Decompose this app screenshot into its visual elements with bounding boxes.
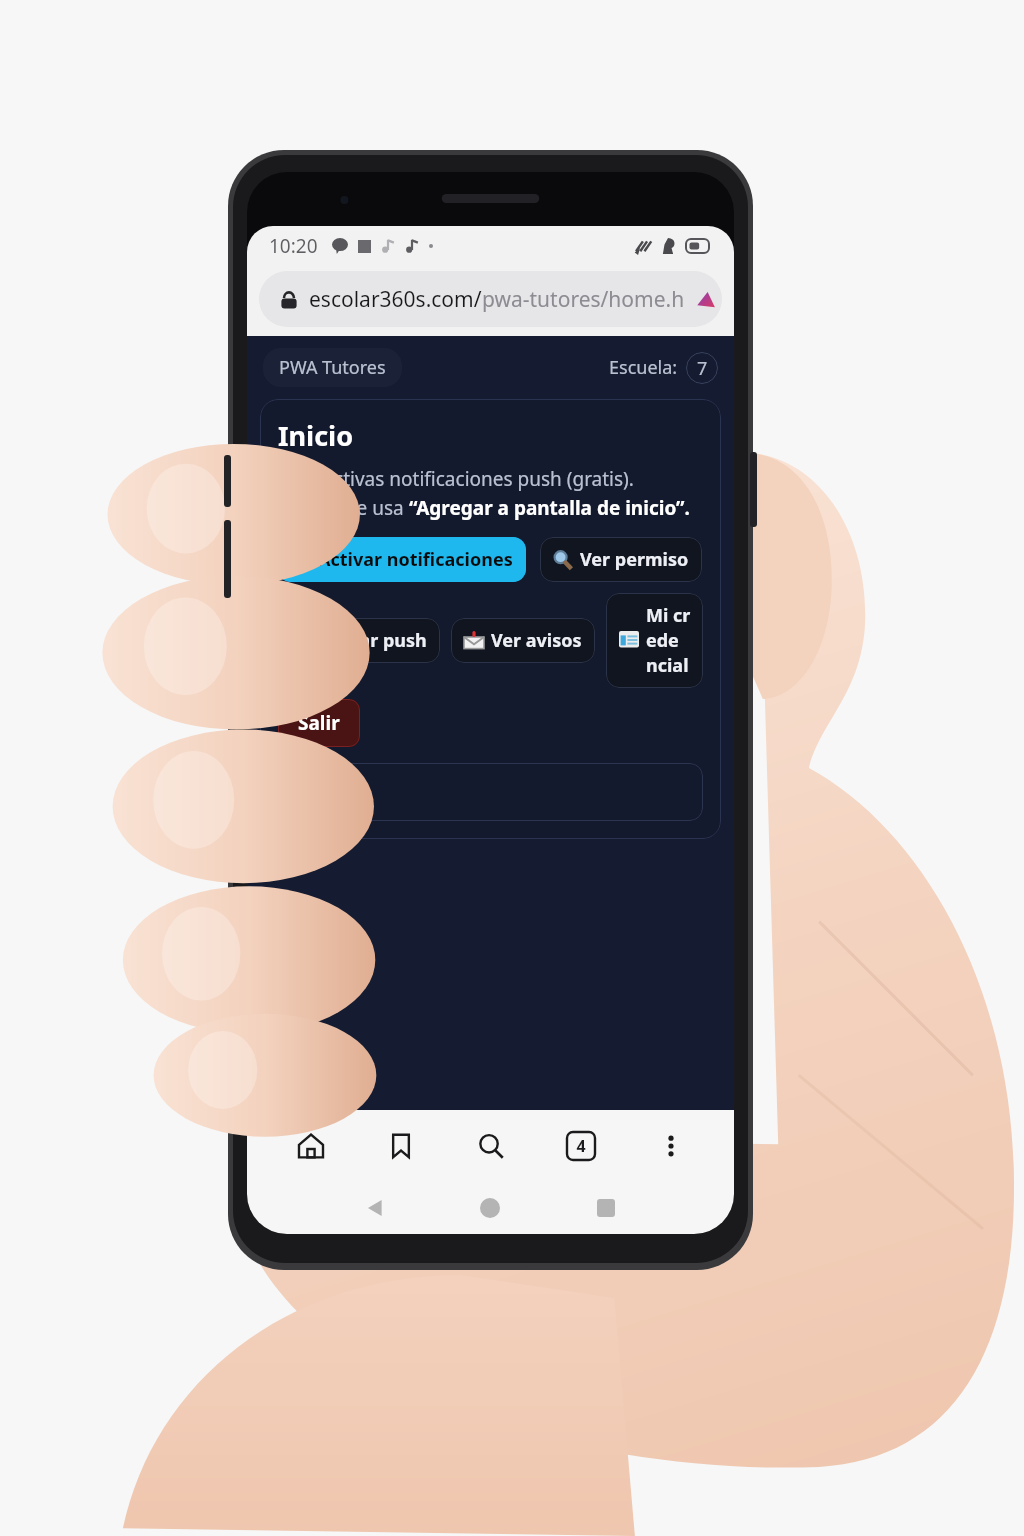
button[interactable]: Ver permiso — [540, 537, 702, 582]
button[interactable]: Mi credencial — [606, 593, 703, 688]
button[interactable]: Probar push — [278, 618, 440, 663]
button[interactable]: Activar notificaciones — [278, 537, 526, 582]
button[interactable]: Salir — [278, 699, 360, 747]
staticText: Ver avisos — [491, 628, 582, 653]
staticText: En iPhone usa — [278, 495, 409, 521]
staticText: Probar push — [318, 628, 427, 653]
staticText: Ver permiso — [580, 547, 689, 572]
button[interactable]: Home — [432, 1185, 548, 1231]
staticText: Aquí activas notificaciones push (gratis… — [278, 466, 634, 492]
button[interactable]: Back — [317, 1185, 432, 1231]
staticText: “Agregar a pantalla de inicio”. — [409, 495, 690, 521]
button[interactable]: PWA Tutores — [263, 348, 402, 387]
button[interactable]: Bookmarks — [356, 1116, 446, 1176]
staticText: escolar360s.com/ — [309, 285, 482, 314]
button[interactable]: Tabs — [536, 1116, 626, 1176]
staticText: 4 — [576, 1135, 586, 1157]
staticText: PWA Tutores — [279, 355, 386, 380]
staticText: Mi credencial — [646, 603, 690, 678]
button[interactable]: Search — [446, 1116, 536, 1176]
button[interactable]: Address bar — [259, 271, 722, 327]
staticText: Salir — [298, 710, 340, 736]
staticText: Escuela: — [609, 355, 678, 380]
button[interactable]: Recents — [548, 1185, 664, 1231]
staticText: Inicio — [278, 417, 354, 454]
button[interactable]: Ver avisos — [451, 618, 595, 663]
staticText: 7 — [697, 356, 708, 381]
staticText: pwa-tutores/home.h — [482, 285, 685, 314]
button[interactable]: More options — [626, 1116, 716, 1176]
staticText: Activar notificaciones — [318, 547, 513, 572]
staticText: 10:20 — [269, 233, 318, 259]
staticText: Listo. — [294, 778, 347, 807]
button[interactable]: Home — [265, 1116, 356, 1176]
